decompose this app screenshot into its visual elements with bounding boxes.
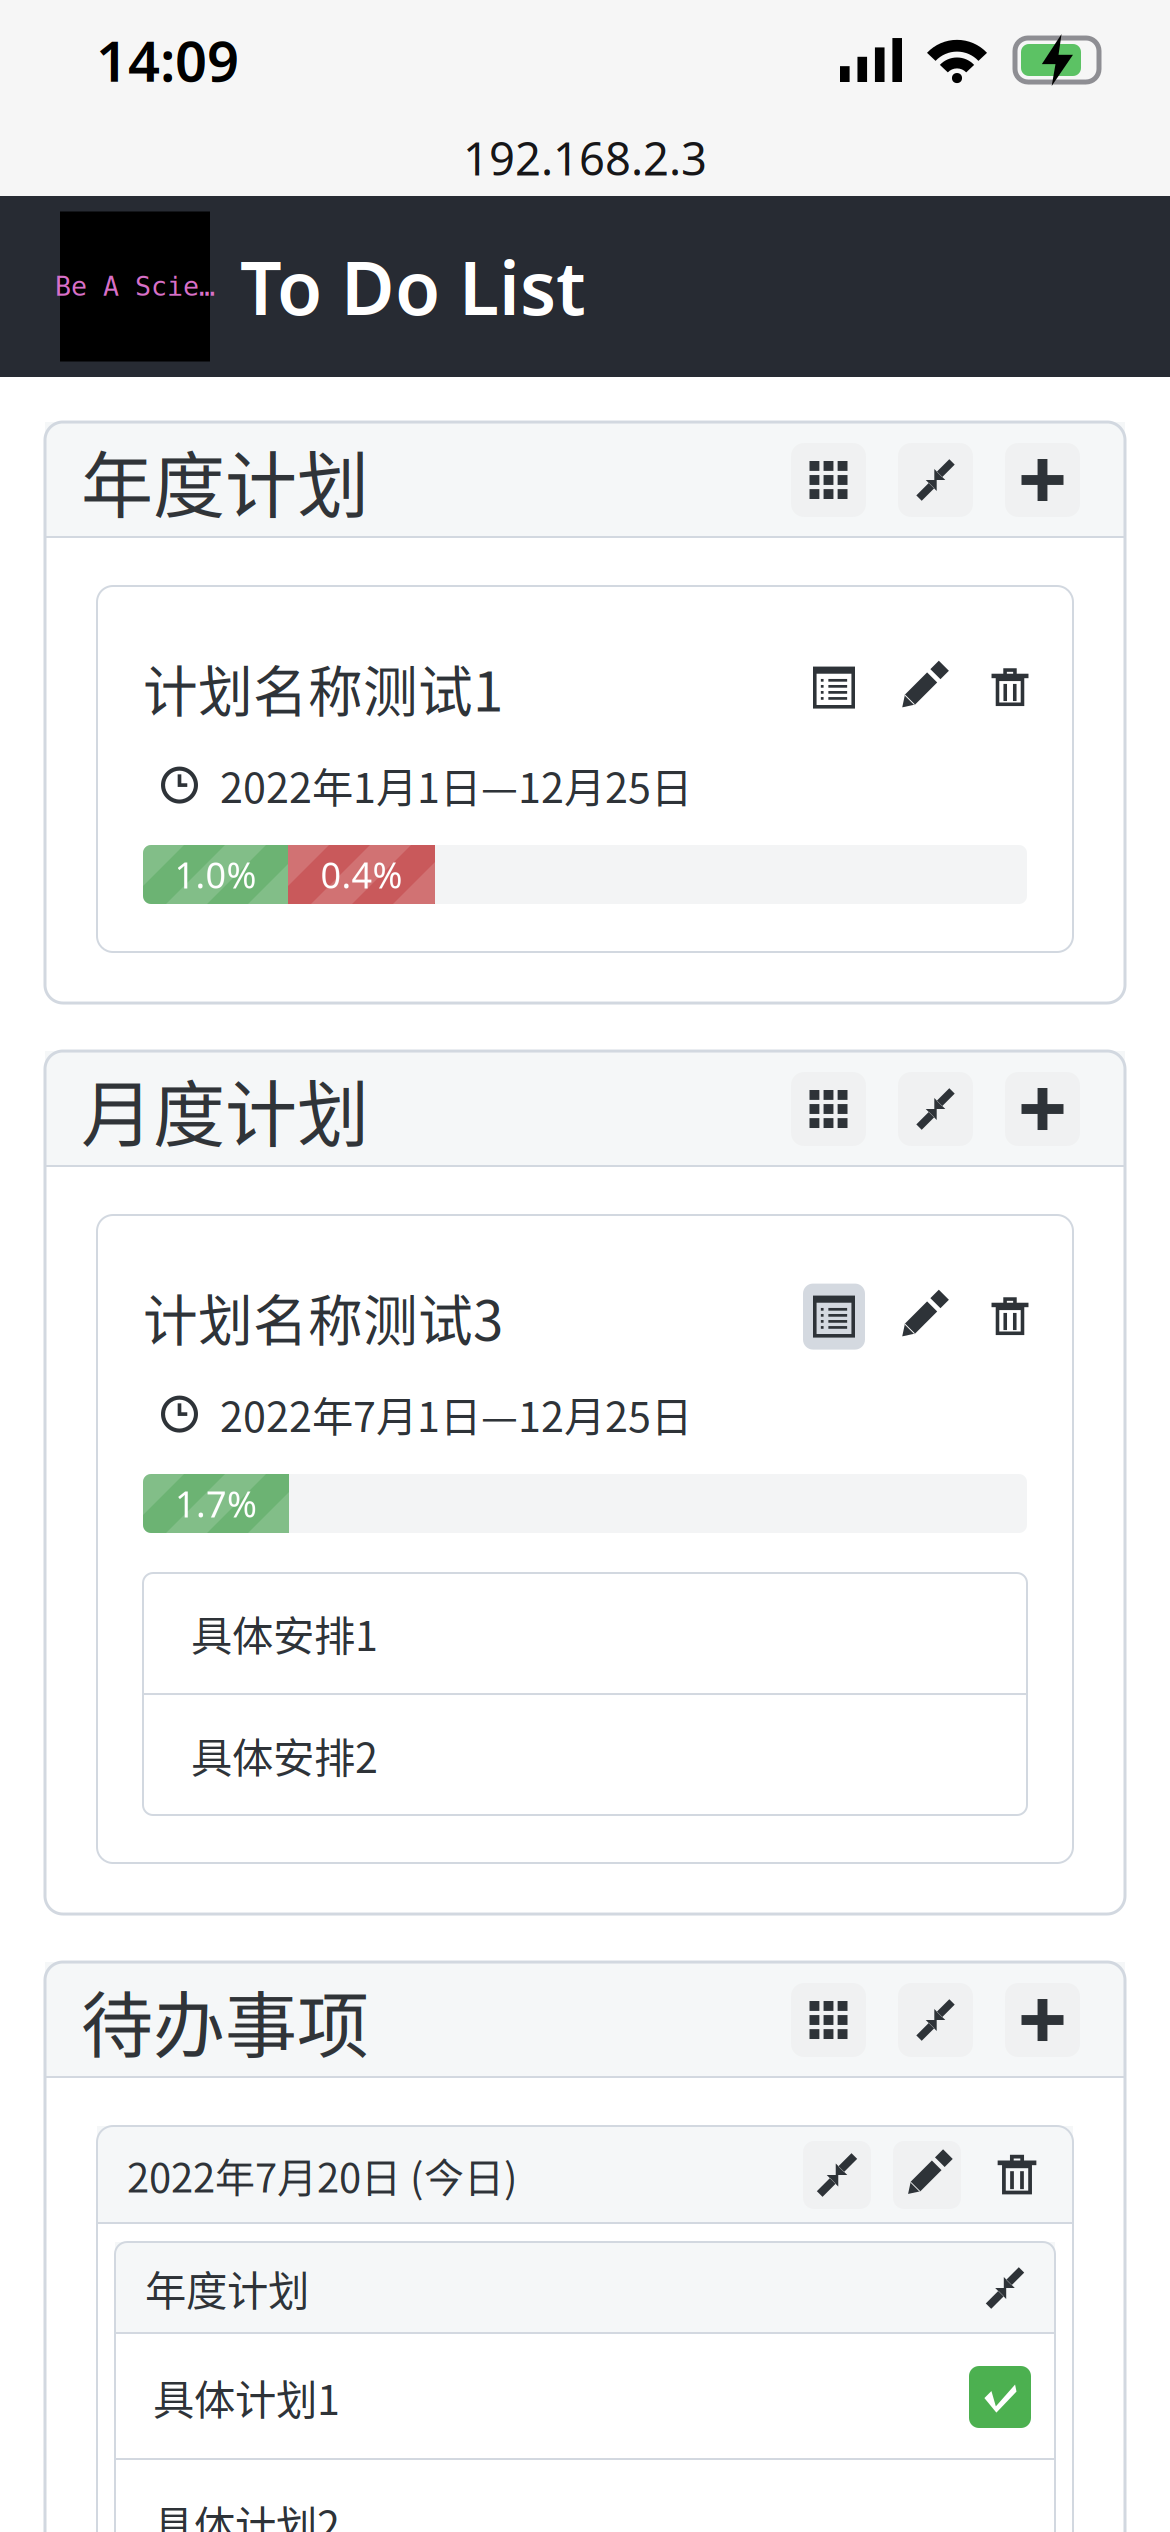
staticText: 具体安排2 — [191, 1725, 378, 1785]
button[interactable]: Collapse — [898, 443, 973, 517]
button[interactable]: Edit — [893, 2141, 961, 2209]
staticText: 192.168.2.3 — [463, 128, 707, 188]
button[interactable]: Edit — [891, 655, 953, 721]
staticText: 14:09 — [96, 23, 239, 97]
staticText: 1.7% — [175, 1480, 257, 1527]
button[interactable]: Delete — [979, 1284, 1041, 1350]
staticText: 月度计划 — [81, 1057, 369, 1161]
button[interactable]: Collapse — [803, 2141, 871, 2209]
staticText: 2022年1月1日—12月25日 — [220, 755, 692, 815]
button[interactable]: Delete — [983, 2141, 1051, 2209]
staticText: To Do List — [240, 238, 586, 335]
staticText: 具体计划1 — [153, 2367, 340, 2427]
staticText: 年度计划 — [145, 2258, 309, 2318]
button[interactable]: Grid view — [791, 1983, 866, 2057]
button[interactable]: Details — [803, 655, 865, 721]
button[interactable]: Add — [1005, 1072, 1080, 1146]
staticText: 具体安排1 — [191, 1603, 378, 1663]
staticText: 具体计划2 — [153, 2493, 340, 2532]
button[interactable]: Collapse — [898, 1983, 973, 2057]
button[interactable]: Collapse — [898, 1072, 973, 1146]
button[interactable]: Add — [1005, 443, 1080, 517]
staticText: Be A Scientist — [55, 271, 215, 302]
button[interactable]: Done — [969, 2366, 1031, 2428]
button[interactable]: Grid view — [791, 1072, 866, 1146]
staticText: 0.4% — [320, 851, 402, 898]
staticText: 待办事项 — [81, 1968, 369, 2072]
staticText: 年度计划 — [81, 428, 369, 532]
button[interactable]: Delete — [979, 655, 1041, 721]
staticText: 2022年7月20日 (今日) — [127, 2146, 518, 2204]
staticText: 计划名称测试3 — [143, 1277, 503, 1356]
staticText: 计划名称测试1 — [143, 648, 503, 727]
staticText: 2022年7月1日—12月25日 — [220, 1384, 692, 1444]
button[interactable]: Edit — [891, 1284, 953, 1350]
button[interactable]: Add — [1005, 1983, 1080, 2057]
button[interactable]: Grid view — [791, 443, 866, 517]
staticText: 1.0% — [174, 851, 256, 898]
button[interactable]: Details — [803, 1284, 865, 1350]
button[interactable]: Collapse — [973, 2256, 1037, 2320]
